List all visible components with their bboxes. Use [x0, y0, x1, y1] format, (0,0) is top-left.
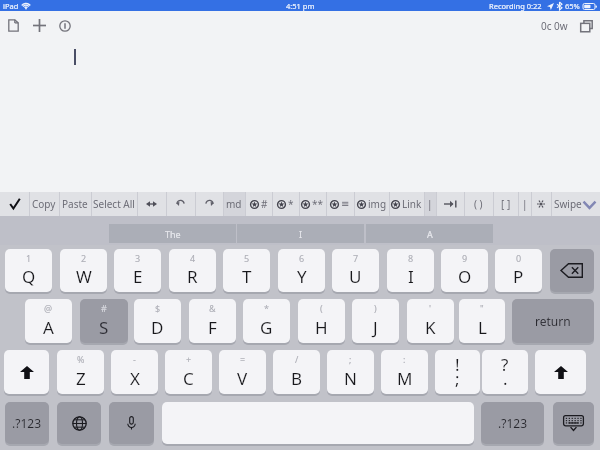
- button[interactable]: =: [219, 350, 266, 394]
- button[interactable]: Dictate: [109, 402, 154, 444]
- button[interactable]: 6: [278, 249, 325, 292]
- button[interactable]: 0: [495, 249, 542, 292]
- button[interactable]: 4: [169, 249, 216, 292]
- button[interactable]: Swipe: [551, 192, 600, 216]
- staticText: Recording 0:22: [489, 1, 542, 11]
- button[interactable]: Hide keyboard: [553, 402, 594, 444]
- button[interactable]: [531, 192, 551, 216]
- staticText: md: [226, 197, 242, 211]
- staticText: .?123: [498, 415, 528, 431]
- button[interactable]: New document: [2, 14, 24, 37]
- staticText: |: [427, 197, 433, 211]
- button[interactable]: 2: [60, 249, 107, 292]
- staticText: Link: [402, 197, 422, 211]
- button[interactable]: [166, 192, 195, 216]
- staticText: U: [349, 265, 362, 288]
- button[interactable]: .?123: [481, 402, 544, 444]
- button[interactable]: Copy: [29, 192, 59, 216]
- button[interactable]: [195, 192, 223, 216]
- other: Change keyboard: [72, 416, 87, 431]
- button[interactable]: &: [189, 299, 236, 343]
- other: Shift: [554, 366, 568, 379]
- button[interactable]: Info: [54, 14, 76, 37]
- button[interactable]: #: [245, 192, 272, 216]
- button[interactable]: [0, 192, 29, 216]
- button[interactable]: Select All: [91, 192, 137, 216]
- button[interactable]: ': [407, 299, 454, 343]
- button[interactable]: return: [512, 299, 594, 343]
- button[interactable]: I: [237, 224, 364, 243]
- button[interactable]: |: [424, 192, 436, 216]
- button[interactable]: ( ): [464, 192, 493, 216]
- button[interactable]: |: [518, 192, 531, 216]
- staticText: The: [165, 228, 181, 240]
- button[interactable]: 7: [332, 249, 379, 292]
- staticText: Q: [22, 265, 36, 288]
- button[interactable]: Paste: [59, 192, 91, 216]
- button[interactable]: :: [381, 350, 428, 394]
- button[interactable]: Shift: [4, 350, 49, 394]
- button[interactable]: 5: [223, 249, 270, 292]
- button[interactable]: Shift: [535, 350, 586, 394]
- button[interactable]: [436, 192, 464, 216]
- button[interactable]: /: [273, 350, 320, 394]
- button[interactable]: #: [80, 299, 128, 343]
- staticText: ?: [501, 353, 509, 376]
- staticText: Y: [297, 265, 307, 288]
- staticText: B: [291, 367, 303, 390]
- staticText: /: [295, 353, 299, 365]
- staticText: 8: [408, 252, 414, 264]
- staticText: 7: [353, 252, 359, 264]
- staticText: Paste: [62, 197, 88, 211]
- staticText: J: [373, 316, 378, 339]
- button[interactable]: ": [459, 299, 505, 343]
- staticText: ;: [455, 367, 460, 390]
- staticText: G: [260, 316, 273, 339]
- staticText: X: [130, 367, 140, 390]
- staticText: 0: [516, 252, 522, 264]
- button[interactable]: 3: [114, 249, 161, 292]
- button[interactable]: .?123: [5, 402, 49, 444]
- button[interactable]: Add: [28, 14, 50, 37]
- button[interactable]: @: [25, 299, 72, 343]
- button[interactable]: Share: [575, 14, 597, 37]
- button[interactable]: md: [223, 192, 245, 216]
- staticText: 4:51 pm: [286, 1, 315, 11]
- staticText: I: [408, 265, 414, 288]
- button[interactable]: **: [299, 192, 326, 216]
- button[interactable]: 9: [441, 249, 488, 292]
- staticText: .: [503, 367, 508, 390]
- button[interactable]: [137, 192, 166, 216]
- button[interactable]: 1: [5, 249, 52, 292]
- button[interactable]: A: [366, 224, 493, 243]
- staticText: ': [429, 302, 432, 314]
- button[interactable]: (: [298, 299, 345, 343]
- staticText: M: [397, 367, 413, 390]
- button[interactable]: -: [111, 350, 158, 394]
- button[interactable]: ): [352, 299, 399, 343]
- button[interactable]: img: [354, 192, 389, 216]
- other: Shift: [20, 366, 34, 379]
- staticText: 1: [26, 252, 32, 264]
- button[interactable]: *: [243, 299, 290, 343]
- button[interactable]: ≡: [326, 192, 354, 216]
- button[interactable]: ?: [482, 350, 528, 394]
- staticText: Swipe: [554, 197, 582, 211]
- button[interactable]: [ ]: [493, 192, 518, 216]
- button[interactable]: %: [57, 350, 104, 394]
- button[interactable]: !: [435, 350, 480, 394]
- button[interactable]: 8: [387, 249, 434, 292]
- button[interactable]: $: [134, 299, 181, 343]
- button[interactable]: ;: [327, 350, 374, 394]
- other: Backspace: [561, 263, 583, 278]
- staticText: 65%: [565, 1, 580, 11]
- staticText: 0c 0w: [541, 19, 568, 33]
- button[interactable]: Link: [389, 192, 424, 216]
- button[interactable]: The: [109, 224, 236, 243]
- button[interactable]: *: [272, 192, 299, 216]
- button[interactable]: +: [165, 350, 212, 394]
- button[interactable]: Change keyboard: [57, 402, 101, 444]
- staticText: %: [77, 353, 85, 365]
- button[interactable]: Backspace: [550, 249, 594, 292]
